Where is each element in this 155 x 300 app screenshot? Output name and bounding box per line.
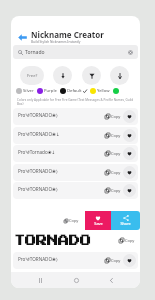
- staticText: Default: [67, 88, 82, 94]
- staticText: Pro༄TORNADO❀⟩: [18, 166, 58, 179]
- staticText: Copy: [111, 188, 121, 193]
- button[interactable]: Pro༄TORNADO❀⟩: [13, 182, 138, 199]
- button[interactable]: Home: [69, 273, 83, 287]
- button[interactable]: Recents: [33, 273, 47, 287]
- staticText: Copy: [111, 133, 121, 138]
- staticText: Pro༄TORNADO❀⟩: [18, 254, 58, 267]
- button[interactable]: Favorite: [123, 110, 136, 123]
- button[interactable]: Sort: [110, 66, 129, 85]
- staticText: Copy: [69, 218, 79, 223]
- button[interactable]: Silver: [16, 88, 34, 94]
- button[interactable]: Tornado: [13, 45, 138, 59]
- staticText: Pro༄Tornado❀↓: [18, 147, 56, 160]
- staticText: Free?: [27, 73, 38, 79]
- button[interactable]: Yellow: [90, 88, 110, 94]
- staticText: Copy: [111, 170, 121, 175]
- button[interactable]: Copy: [105, 188, 121, 193]
- button[interactable]: Copy: [105, 114, 121, 119]
- button[interactable]: Clear: [127, 49, 134, 56]
- button[interactable]: Favorite: [123, 184, 136, 197]
- button[interactable]: Favorite: [123, 166, 136, 179]
- button[interactable]: Pro༄Tornado❀↓: [13, 145, 138, 162]
- staticText: Build Stylish Nicknames Instantly: [31, 40, 81, 44]
- button[interactable]: Copy: [105, 170, 121, 175]
- button[interactable]: Copy: [119, 238, 135, 243]
- staticText: Save: [94, 221, 103, 226]
- staticText: Silver: [23, 88, 34, 94]
- button[interactable]: Copy: [105, 133, 121, 138]
- staticText: TORNADO: [14, 235, 91, 246]
- button[interactable]: [113, 88, 119, 94]
- button[interactable]: Download: [53, 66, 72, 85]
- button[interactable]: Copy: [11, 211, 85, 230]
- button[interactable]: Back: [15, 30, 29, 44]
- button[interactable]: Pro༄TORNADO❀↓: [13, 127, 138, 144]
- staticText: Tornado: [25, 49, 45, 56]
- button[interactable]: Pro༄TORNADO❀⟩: [13, 164, 138, 181]
- staticText: Nickname Creator: [31, 29, 104, 40]
- button[interactable]: Pro༄TORNADO❀⟩: [13, 252, 138, 269]
- staticText: Pro༄TORNADO❀⟩: [18, 110, 58, 123]
- button[interactable]: Favorite: [123, 254, 136, 267]
- button[interactable]: Default: [60, 88, 87, 94]
- staticText: Copy: [111, 151, 121, 156]
- button[interactable]: Free?: [20, 66, 44, 85]
- button[interactable]: Share: [111, 211, 140, 230]
- button[interactable]: Save: [85, 211, 111, 230]
- staticText: Copy: [111, 258, 121, 263]
- button[interactable]: Purple: [37, 88, 57, 94]
- staticText: Share: [120, 221, 131, 226]
- staticText: Colors only Applicable for Free Fire Gam…: [17, 98, 135, 106]
- staticText: Copy: [111, 114, 121, 119]
- button[interactable]: Favorite: [123, 147, 136, 160]
- button[interactable]: Copy: [105, 258, 121, 263]
- button[interactable]: Favorite: [123, 129, 136, 142]
- button[interactable]: TORNADO: [13, 230, 138, 250]
- button[interactable]: Back: [104, 273, 118, 287]
- staticText: Pro༄TORNADO❀↓: [18, 129, 60, 142]
- staticText: Yellow: [97, 88, 110, 94]
- staticText: Purple: [44, 88, 57, 94]
- staticText: Copy: [125, 238, 135, 243]
- staticText: Pro༄TORNADO❀⟩: [18, 184, 58, 197]
- button[interactable]: Filter: [82, 66, 101, 85]
- button[interactable]: Copy: [105, 151, 121, 156]
- button[interactable]: Pro༄TORNADO❀⟩: [13, 108, 138, 125]
